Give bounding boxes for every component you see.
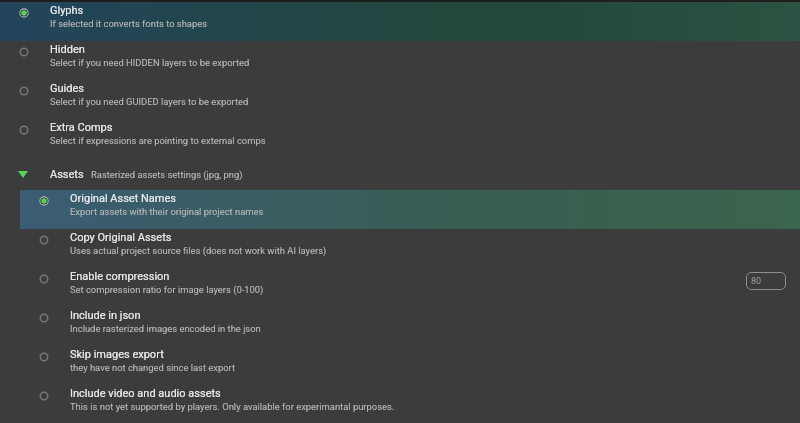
staticText: Select if you need GUIDED layers to be e… — [50, 96, 249, 107]
button[interactable]: Hidden — [0, 41, 800, 80]
staticText: Guides — [50, 82, 84, 95]
staticText: Include in json — [70, 309, 141, 322]
button[interactable]: Include in json — [20, 307, 800, 346]
staticText: Skip images export — [70, 348, 164, 361]
button[interactable]: 80 — [746, 272, 786, 290]
button[interactable]: Extra Comps — [0, 119, 800, 158]
staticText: Include rasterized images encoded in the… — [70, 323, 261, 334]
button[interactable]: Enable compression — [20, 268, 800, 307]
button[interactable]: Include video and audio assets — [20, 385, 800, 423]
other: Collapse Assets section — [18, 171, 28, 178]
staticText: Assets — [50, 168, 84, 181]
staticText: Rasterized assets settings (jpg, png) — [91, 169, 243, 180]
staticText: Export assets with their original projec… — [70, 206, 264, 217]
button[interactable]: Collapse Assets section — [0, 158, 800, 190]
staticText: Original Asset Names — [70, 192, 176, 205]
staticText: Set compression ratio for image layers (… — [70, 284, 264, 295]
button[interactable]: Glyphs — [0, 2, 800, 41]
staticText: Select if expressions are pointing to ex… — [50, 135, 266, 146]
staticText: Copy Original Assets — [70, 231, 172, 244]
staticText: Hidden — [50, 43, 85, 56]
staticText: 80 — [751, 276, 762, 287]
button[interactable]: Guides — [0, 80, 800, 119]
staticText: Glyphs — [50, 4, 84, 17]
staticText: If selected it converts fonts to shapes — [50, 18, 208, 29]
staticText: they have not changed since last export — [70, 362, 236, 373]
staticText: Extra Comps — [50, 121, 113, 134]
button[interactable]: Original Asset Names — [20, 190, 800, 229]
staticText: Uses actual project source files (does n… — [70, 245, 327, 256]
button[interactable]: Skip images export — [20, 346, 800, 385]
staticText: Enable compression — [70, 270, 170, 283]
staticText: This is not yet supported by players. On… — [70, 401, 395, 412]
staticText: Select if you need HIDDEN layers to be e… — [50, 57, 250, 68]
staticText: Include video and audio assets — [70, 387, 221, 400]
button[interactable]: Copy Original Assets — [20, 229, 800, 268]
